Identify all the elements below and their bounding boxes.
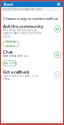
staticText: users. [3, 35, 11, 38]
staticText: Start a chat [3, 61, 16, 65]
staticText: owners and other benefits [3, 31, 41, 35]
staticText: Chat [3, 49, 13, 55]
button[interactable]: Start a chat [3, 61, 16, 66]
staticText: Find an answer [6, 40, 16, 47]
staticText: Back [3, 1, 12, 7]
staticText: Start a chat with us. [3, 54, 28, 58]
staticText: Get a callback [3, 69, 29, 74]
button[interactable]: Back [2, 1, 13, 7]
button[interactable]: Close [55, 1, 61, 7]
staticText: troubleshoot.employer.gov [2, 7, 41, 11]
staticText: Get help from business [3, 28, 36, 32]
button[interactable]: Find an answer [3, 41, 19, 46]
staticText: Open M-F 8:00 AM - 5:00 [3, 74, 39, 77]
staticText: Ask the community [3, 24, 43, 29]
staticText: Choose a way to connect with us [3, 16, 58, 21]
staticText: PM ET [3, 77, 10, 81]
